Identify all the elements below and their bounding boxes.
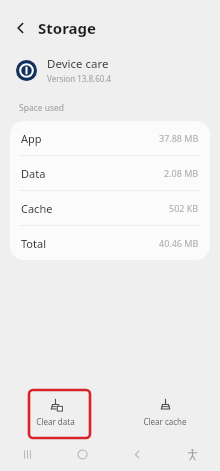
button[interactable]: Clear cache bbox=[133, 391, 197, 433]
staticText: Device care bbox=[47, 56, 109, 72]
button[interactable]: Clear data bbox=[26, 391, 85, 433]
staticText: 502 KB bbox=[169, 202, 199, 214]
staticText: Storage bbox=[38, 18, 96, 38]
button[interactable]: Total bbox=[10, 226, 210, 260]
button[interactable]: Accessibility bbox=[165, 440, 220, 468]
staticText: 37.88 MB bbox=[159, 132, 199, 144]
button[interactable]: Back bbox=[110, 440, 165, 468]
staticText: Data bbox=[21, 166, 46, 181]
staticText: 40.46 MB bbox=[159, 237, 199, 249]
button[interactable]: Device care bbox=[0, 54, 220, 86]
staticText: Version 13.8.60.4 bbox=[47, 73, 112, 84]
staticText: Cache bbox=[21, 201, 53, 216]
button[interactable]: App bbox=[10, 121, 210, 155]
button[interactable]: Back bbox=[10, 17, 32, 39]
staticText: Clear cache bbox=[143, 416, 187, 427]
staticText: Total bbox=[21, 236, 46, 251]
button[interactable]: Home bbox=[55, 440, 110, 468]
staticText: Space used bbox=[19, 102, 65, 114]
staticText: Clear data bbox=[36, 416, 75, 427]
button[interactable]: Cache bbox=[10, 191, 210, 225]
staticText: 2.08 MB bbox=[164, 167, 199, 179]
staticText: App bbox=[21, 131, 42, 146]
button[interactable]: Recents bbox=[0, 440, 55, 468]
button[interactable]: Data bbox=[10, 156, 210, 190]
